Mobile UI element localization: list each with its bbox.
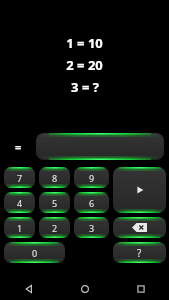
button[interactable]: Enter [113,167,166,213]
button[interactable]: 7 [4,167,35,188]
button[interactable]: 1 [4,217,35,238]
button[interactable]: Answer input [36,133,164,160]
staticText: 6 [89,197,95,209]
button[interactable]: 9 [74,167,109,188]
staticText: 7 [17,172,23,184]
button[interactable]: 8 [39,167,70,188]
staticText: 4 [17,197,23,209]
staticText: 2 = 20 [66,56,103,74]
staticText: 8 [52,172,58,184]
button[interactable]: 3 [74,217,109,238]
button[interactable]: 5 [39,192,70,213]
staticText: ? [137,246,142,260]
button[interactable]: 4 [4,192,35,213]
button[interactable]: 6 [74,192,109,213]
button[interactable]: 2 [39,217,70,238]
staticText: 1 = 10 [66,34,103,52]
staticText: 3 [89,222,95,234]
button[interactable]: 0 [4,242,65,263]
staticText: = [15,139,22,154]
staticText: 1 [17,222,23,234]
button[interactable]: Back [0,278,57,300]
button[interactable]: Recent apps [113,278,169,300]
staticText: 3 = ? [71,78,99,96]
button[interactable]: Backspace [113,217,166,238]
button[interactable]: Home [57,278,113,300]
button[interactable]: ? [113,242,166,263]
staticText: 2 [52,222,58,234]
staticText: 9 [89,172,95,184]
staticText: 0 [32,247,38,259]
staticText: 5 [52,197,58,209]
